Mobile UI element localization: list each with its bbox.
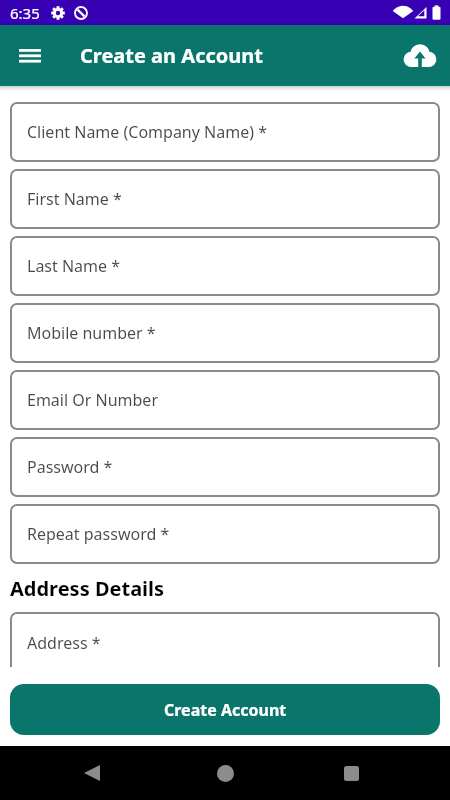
button[interactable]: First Name * [10,169,440,229]
staticText: First Name * [27,188,122,210]
staticText: Address * [27,632,101,654]
button[interactable]: Create Account [10,684,440,735]
staticText: Email Or Number [27,389,158,411]
button[interactable]: Address * [10,612,440,667]
staticText: Create an Account [80,42,263,69]
button[interactable] [6,32,54,80]
button[interactable]: Email Or Number [10,370,440,430]
staticText: Password * [27,456,113,478]
staticText: Mobile number * [27,322,156,344]
staticText: Address Details [10,575,165,602]
button[interactable]: Password * [10,437,440,497]
button[interactable]: Repeat password * [10,504,440,564]
staticText: Repeat password * [27,523,170,545]
button[interactable] [74,755,110,791]
button[interactable] [333,755,369,791]
button[interactable] [396,32,444,80]
button[interactable] [207,755,243,791]
staticText: Client Name (Company Name) * [27,121,267,143]
staticText: 6:35 [10,3,40,23]
staticText: Create Account [164,699,287,721]
button[interactable]: Mobile number * [10,303,440,363]
button[interactable]: Client Name (Company Name) * [10,102,440,162]
staticText: Last Name * [27,255,121,277]
button[interactable]: Last Name * [10,236,440,296]
